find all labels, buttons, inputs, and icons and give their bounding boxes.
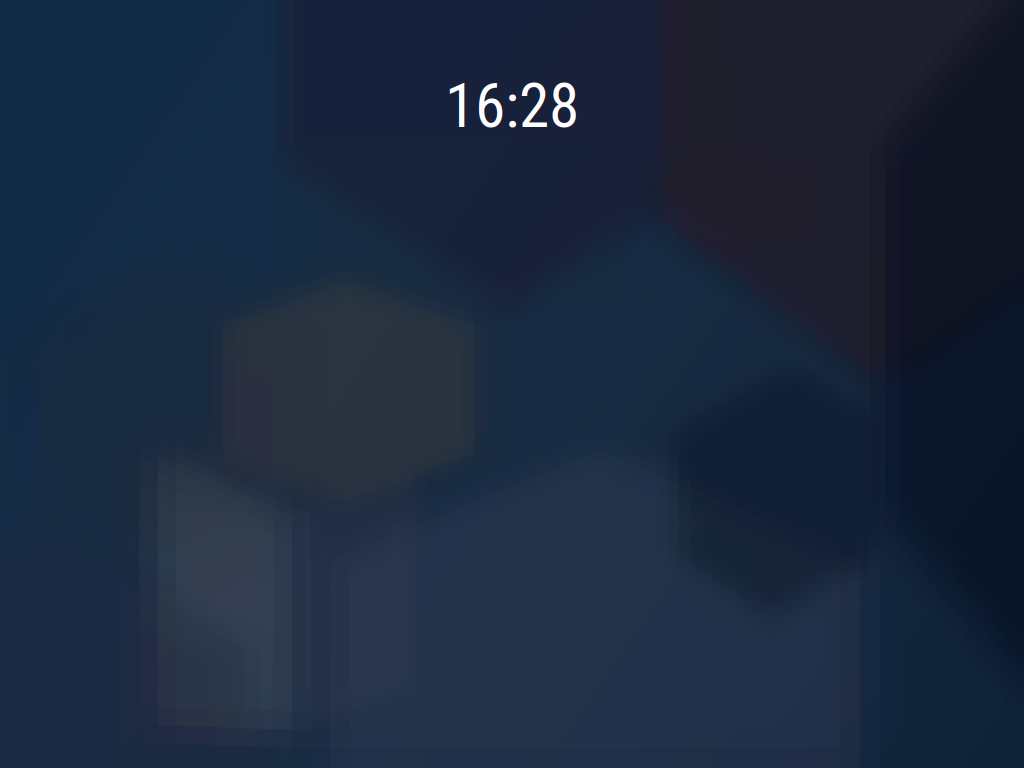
staticText: 16:28 [445,70,579,142]
